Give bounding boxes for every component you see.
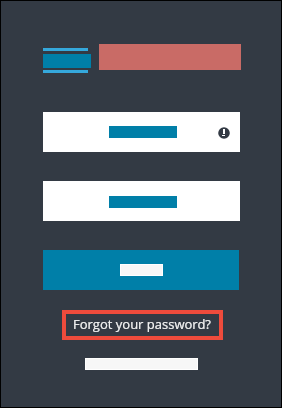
button[interactable]: Error [43, 112, 240, 152]
button[interactable]: Forgot your password? [62, 310, 223, 340]
other: Error [215, 124, 233, 142]
button[interactable] [43, 250, 239, 290]
staticText: Forgot your password? [73, 315, 211, 333]
button[interactable] [43, 181, 240, 221]
